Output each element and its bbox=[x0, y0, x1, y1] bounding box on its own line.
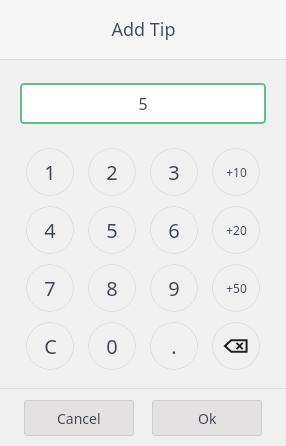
staticText: 3 bbox=[168, 159, 180, 186]
button[interactable]: 5 bbox=[20, 83, 266, 124]
button[interactable]: Cancel bbox=[24, 400, 134, 436]
staticText: 8 bbox=[106, 275, 118, 302]
button[interactable]: +50 bbox=[212, 264, 260, 312]
button[interactable]: 1 bbox=[26, 148, 74, 196]
staticText: 4 bbox=[44, 217, 56, 244]
button[interactable]: 3 bbox=[150, 148, 198, 196]
staticText: 5 bbox=[106, 217, 118, 244]
button[interactable]: +20 bbox=[212, 206, 260, 254]
button[interactable]: 9 bbox=[150, 264, 198, 312]
button[interactable]: +10 bbox=[212, 148, 260, 196]
staticText: 0 bbox=[106, 333, 118, 360]
button[interactable]: C bbox=[26, 322, 74, 370]
staticText: Ok bbox=[198, 409, 217, 428]
button[interactable]: Ok bbox=[152, 400, 262, 436]
staticText: 9 bbox=[168, 275, 180, 302]
button[interactable]: Backspace bbox=[212, 322, 260, 370]
staticText: +20 bbox=[226, 222, 247, 238]
staticText: +50 bbox=[226, 280, 247, 296]
button[interactable]: 4 bbox=[26, 206, 74, 254]
button[interactable]: 7 bbox=[26, 264, 74, 312]
staticText: 5 bbox=[138, 93, 148, 115]
button[interactable]: 6 bbox=[150, 206, 198, 254]
button[interactable]: 0 bbox=[88, 322, 136, 370]
button[interactable]: 5 bbox=[88, 206, 136, 254]
button[interactable]: 8 bbox=[88, 264, 136, 312]
staticText: C bbox=[44, 333, 57, 360]
staticText: Add Tip bbox=[111, 17, 176, 42]
button[interactable]: . bbox=[150, 322, 198, 370]
staticText: 2 bbox=[106, 159, 118, 186]
staticText: +10 bbox=[226, 164, 247, 180]
staticText: Cancel bbox=[57, 409, 101, 428]
staticText: . bbox=[171, 333, 177, 360]
staticText: 7 bbox=[44, 275, 56, 302]
staticText: 1 bbox=[44, 159, 56, 186]
button[interactable]: 2 bbox=[88, 148, 136, 196]
staticText: 6 bbox=[168, 217, 180, 244]
